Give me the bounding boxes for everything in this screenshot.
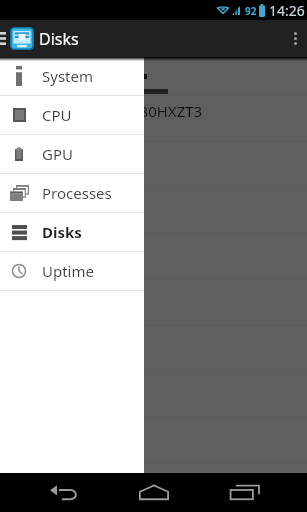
button[interactable]: CPU: [0, 96, 144, 134]
button[interactable]: GPU: [0, 135, 144, 173]
staticText: Uptime: [42, 261, 94, 281]
button[interactable]: Home: [114, 473, 194, 512]
staticText: Processes: [42, 183, 112, 203]
button[interactable]: System: [0, 57, 144, 95]
button[interactable]: Back: [17, 473, 97, 512]
staticText: CPU: [42, 105, 72, 125]
button[interactable]: Recent apps: [210, 473, 290, 512]
staticText: GPU: [42, 144, 73, 164]
button[interactable]: More options: [283, 20, 307, 57]
staticText: System: [42, 66, 93, 86]
button[interactable]: Processes: [0, 174, 144, 212]
staticText: Disks: [42, 222, 82, 242]
staticText: 980HXZT3: [131, 101, 203, 121]
button[interactable]: Disks: [0, 213, 144, 251]
button[interactable]: Open navigation drawer: [0, 20, 8, 57]
button[interactable]: Uptime: [0, 252, 144, 290]
staticText: Disks: [39, 28, 79, 50]
staticText: 14:26: [269, 1, 305, 20]
staticText: 92: [245, 4, 257, 18]
